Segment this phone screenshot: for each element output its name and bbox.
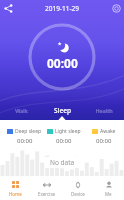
staticText: Deep sleep [15, 128, 42, 135]
button[interactable]: Share [0, 0, 16, 16]
staticText: 00:00 [17, 137, 33, 145]
staticText: 00:00 [96, 137, 112, 145]
staticText: Walk [15, 107, 28, 114]
button[interactable]: Sync [108, 0, 124, 16]
button[interactable]: Walk [0, 104, 42, 116]
button[interactable]: Light sleep [44, 128, 84, 145]
staticText: Sleep [54, 106, 71, 115]
button[interactable]: Device [62, 176, 93, 200]
staticText: 00:00 [47, 55, 78, 71]
staticText: 2019-11-29 [45, 4, 79, 13]
staticText: Health [95, 107, 113, 114]
staticText: Light sleep [55, 128, 81, 135]
staticText: Home [9, 191, 22, 197]
staticText: Device [71, 191, 85, 197]
staticText: Exercise [38, 191, 56, 197]
button[interactable]: Me [93, 176, 124, 200]
button[interactable]: Exercise [31, 176, 62, 200]
button[interactable]: Deep sleep [5, 128, 44, 145]
staticText: No data [50, 158, 75, 167]
staticText: Awake [100, 128, 116, 135]
button[interactable]: Sleep [42, 104, 83, 116]
staticText: Me [105, 191, 112, 197]
button[interactable]: Awake [84, 128, 124, 145]
button[interactable]: Home [0, 176, 31, 200]
button[interactable]: Health [83, 104, 124, 116]
staticText: 00:00 [56, 137, 72, 145]
